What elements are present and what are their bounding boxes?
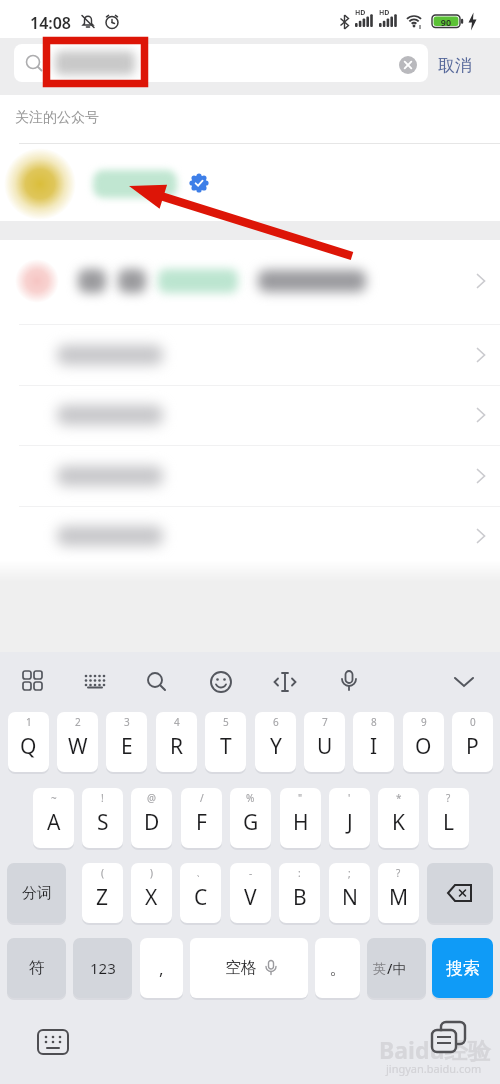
button[interactable]: ?	[428, 788, 469, 848]
staticText: G	[243, 808, 259, 837]
staticText: 14:08	[30, 12, 72, 34]
staticText: S	[97, 808, 109, 837]
button[interactable]	[399, 56, 417, 74]
staticText: I	[370, 732, 378, 761]
staticText: 4	[174, 715, 180, 729]
button[interactable]: 搜索	[432, 938, 493, 998]
button[interactable]: "	[280, 788, 321, 848]
button[interactable]: ?	[378, 863, 419, 923]
staticText: U	[317, 732, 333, 761]
button[interactable]: '	[329, 788, 370, 848]
button[interactable]: 5	[205, 712, 246, 772]
button[interactable]	[432, 1022, 466, 1058]
staticText: 3	[124, 715, 130, 729]
button[interactable]: 6	[255, 712, 296, 772]
staticText: 1	[26, 715, 32, 729]
button[interactable]: @	[131, 788, 172, 848]
button[interactable]	[0, 240, 500, 324]
staticText: H	[293, 808, 309, 837]
button[interactable]	[336, 668, 362, 694]
button[interactable]: (	[82, 863, 123, 923]
button[interactable]: *	[378, 788, 419, 848]
button[interactable]	[144, 669, 170, 695]
staticText: 7	[322, 715, 328, 729]
staticText: !	[101, 791, 104, 805]
staticText: 分词	[22, 884, 52, 903]
staticText: 。	[329, 957, 347, 980]
staticText: V	[244, 883, 257, 912]
button[interactable]	[0, 325, 500, 385]
button[interactable]: 。	[315, 938, 360, 998]
button[interactable]	[452, 674, 476, 690]
staticText: ~	[51, 791, 57, 805]
staticText: W	[68, 732, 88, 761]
button[interactable]	[427, 863, 493, 923]
button[interactable]	[272, 669, 298, 695]
staticText: 8	[371, 715, 377, 729]
staticText: 英	[373, 960, 386, 976]
button[interactable]: %	[230, 788, 271, 848]
button[interactable]: ,	[140, 938, 183, 998]
staticText: 90	[437, 16, 455, 28]
staticText: :	[298, 866, 301, 880]
button[interactable]	[0, 385, 500, 445]
button[interactable]: 2	[57, 712, 98, 772]
button[interactable]	[0, 446, 500, 506]
staticText: 9	[421, 715, 427, 729]
button[interactable]: 、	[180, 863, 221, 923]
staticText: N	[342, 883, 358, 912]
button[interactable]: 0	[452, 712, 493, 772]
staticText: X	[145, 883, 158, 912]
button[interactable]: 3	[106, 712, 147, 772]
staticText: 搜索	[446, 958, 480, 979]
button[interactable]: /	[181, 788, 222, 848]
staticText: /	[200, 791, 204, 805]
staticText: ,	[159, 957, 164, 980]
button[interactable]	[14, 44, 428, 82]
button[interactable]	[38, 1030, 68, 1056]
staticText: M	[389, 883, 409, 912]
button[interactable]	[82, 668, 108, 694]
staticText: 6	[273, 715, 279, 729]
staticText: ;	[348, 866, 351, 880]
button[interactable]: 1	[8, 712, 49, 772]
staticText: '	[348, 791, 351, 805]
staticText: O	[415, 732, 432, 761]
button[interactable]: -	[230, 863, 271, 923]
staticText: )	[150, 866, 153, 880]
button[interactable]: 英	[367, 938, 426, 998]
button[interactable]	[20, 668, 46, 694]
button[interactable]: !	[82, 788, 123, 848]
button[interactable]: 空格	[190, 938, 308, 998]
button[interactable]: 符	[7, 938, 66, 998]
button[interactable]: 分词	[7, 863, 66, 923]
staticText: 5	[223, 715, 229, 729]
staticText: @	[147, 791, 156, 805]
staticText: 符	[29, 958, 45, 978]
button[interactable]	[0, 145, 500, 221]
button[interactable]	[208, 669, 234, 695]
button[interactable]: 取消	[438, 55, 490, 81]
staticText: Baidu经验	[379, 1034, 491, 1065]
staticText: Y	[270, 732, 282, 761]
staticText: (	[101, 866, 104, 880]
button[interactable]	[0, 506, 500, 566]
button[interactable]: :	[279, 863, 320, 923]
button[interactable]: 7	[304, 712, 345, 772]
staticText: L	[443, 808, 455, 837]
button[interactable]: 8	[353, 712, 394, 772]
staticText: D	[144, 808, 160, 837]
staticText: R	[170, 732, 184, 761]
staticText: B	[293, 883, 307, 912]
staticText: J	[347, 808, 353, 837]
staticText: ?	[396, 866, 401, 880]
staticText: E	[121, 732, 133, 761]
button[interactable]: ;	[329, 863, 370, 923]
button[interactable]: 4	[156, 712, 197, 772]
button[interactable]: 9	[403, 712, 444, 772]
button[interactable]: ~	[33, 788, 74, 848]
button[interactable]: )	[131, 863, 172, 923]
staticText: T	[220, 732, 232, 761]
button[interactable]: 123	[73, 938, 132, 998]
staticText: F	[196, 808, 207, 837]
